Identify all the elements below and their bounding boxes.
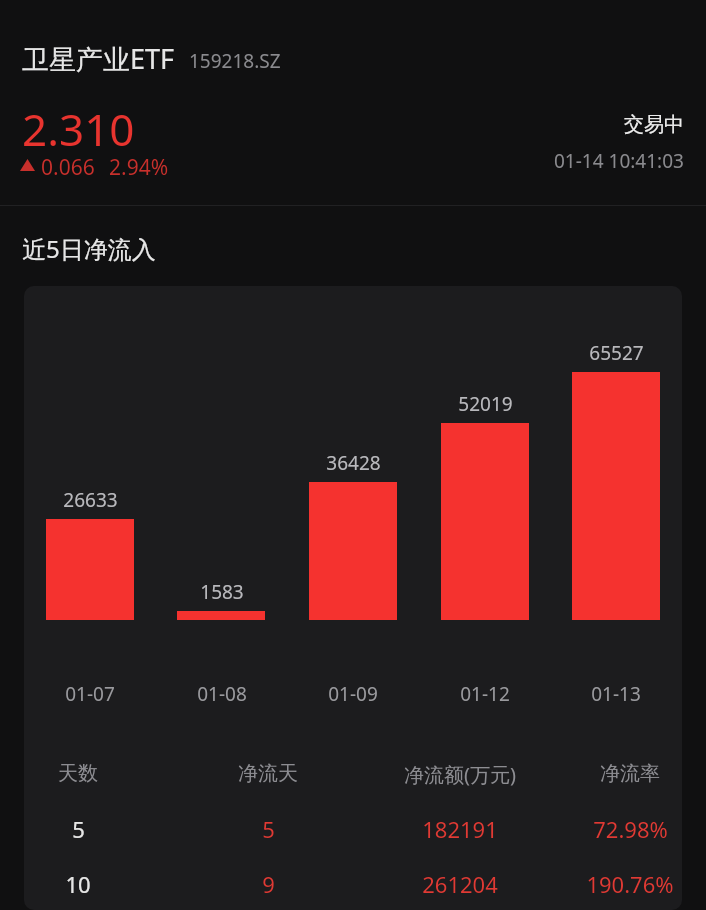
staticText: 1583 [200,579,244,605]
staticText: 52019 [458,391,513,417]
staticText: 10 [65,869,91,899]
staticText: 5 [72,814,85,844]
button[interactable]: 26633 [24,286,682,910]
staticText: 65527 [589,340,644,366]
staticText: 26633 [63,487,118,513]
staticText: 净流天 [238,761,298,786]
staticText: 天数 [58,761,98,786]
staticText: 交易中 [624,112,684,137]
staticText: 01-13 [591,681,641,707]
staticText: 159218.SZ [189,48,281,74]
staticText: 5 [262,814,275,844]
staticText: 72.98% [593,814,668,844]
staticText: 2.94% [109,153,169,182]
staticText: 净流额(万元) [404,761,516,788]
staticText: 261204 [422,869,498,899]
staticText: 01-07 [65,681,115,707]
staticText: 01-08 [197,681,247,707]
button[interactable]: 卫星产业ETF [0,0,706,205]
staticText: 01-09 [328,681,378,707]
staticText: 01-14 10:41:03 [554,148,684,174]
staticText: 182191 [422,814,498,844]
button[interactable]: 近5日净流入 [0,206,706,286]
staticText: 01-12 [460,681,510,707]
staticText: 36428 [326,450,381,476]
staticText: 190.76% [586,869,674,899]
staticText: 净流率 [600,761,660,786]
staticText: 9 [262,869,275,899]
staticText: 卫星产业ETF [22,40,175,77]
staticText: 0.066 [41,153,95,182]
staticText: 2.310 [22,99,135,159]
staticText: 近5日净流入 [22,232,156,265]
